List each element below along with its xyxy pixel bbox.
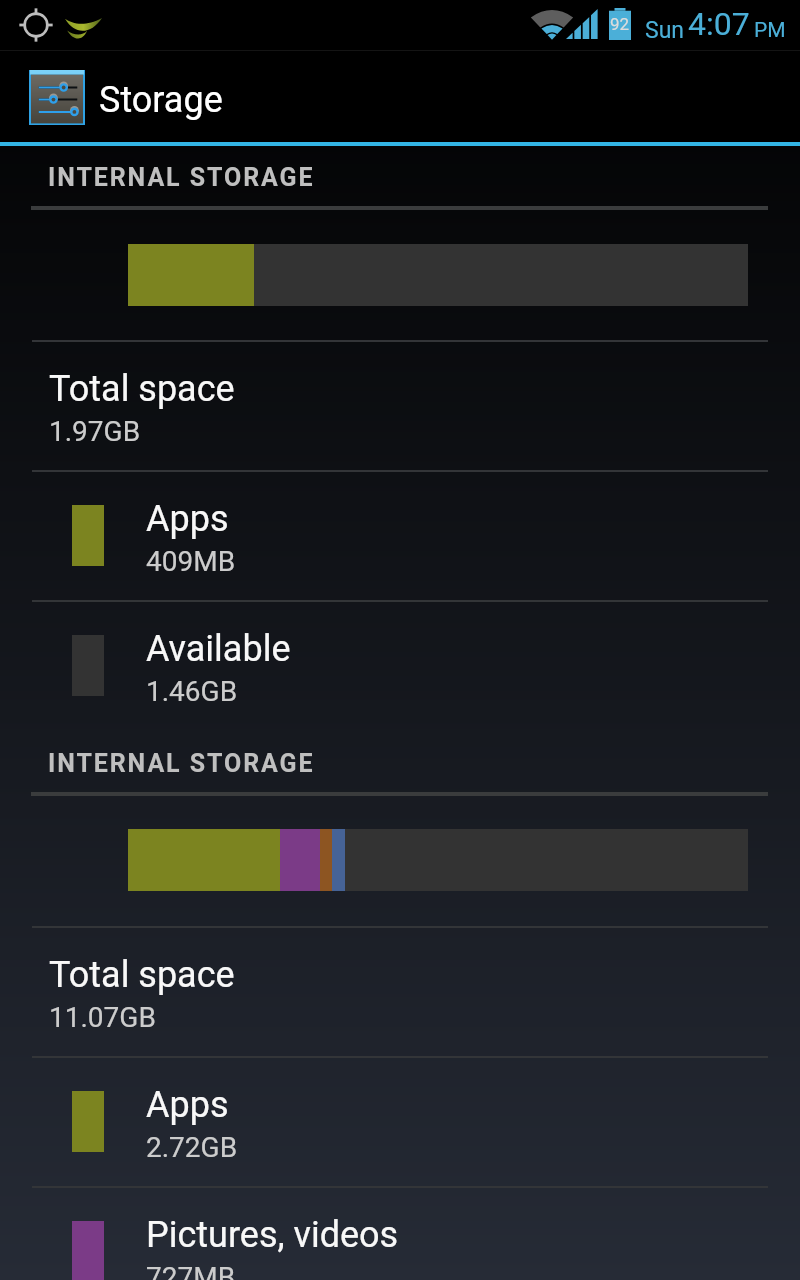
other: GPS — [19, 8, 53, 42]
other: Battery 92 percent — [609, 8, 631, 40]
staticText: 92 — [610, 14, 630, 34]
button[interactable]: Available — [0, 600, 800, 731]
staticText: 409MB — [146, 545, 236, 578]
button[interactable]: Apps — [0, 470, 800, 600]
staticText: Apps — [146, 1084, 229, 1126]
staticText: Available — [146, 628, 291, 670]
staticText: 1.46GB — [146, 675, 238, 708]
button[interactable]: Apps — [0, 1056, 800, 1186]
staticText: INTERNAL STORAGE — [48, 163, 315, 192]
staticText: Sun — [645, 17, 685, 44]
button[interactable]: Pictures, videos — [0, 1186, 800, 1280]
button[interactable]: Settings — [0, 51, 800, 142]
staticText: Total space — [49, 954, 235, 996]
staticText: Total space — [49, 368, 235, 410]
staticText: 2.72GB — [146, 1131, 238, 1164]
staticText: 11.07GB — [49, 1001, 156, 1034]
staticText: Pictures, videos — [146, 1214, 399, 1256]
other: Wi-Fi — [530, 8, 574, 40]
staticText: Apps — [146, 498, 229, 540]
staticText: 727MB — [146, 1261, 236, 1280]
other: Settings — [29, 70, 85, 125]
staticText: 4:07 — [688, 5, 750, 43]
staticText: PM — [754, 18, 786, 43]
staticText: INTERNAL STORAGE — [48, 749, 315, 778]
button[interactable]: Total space — [0, 926, 800, 1056]
button[interactable]: Total space — [0, 340, 800, 470]
other: Signal — [566, 8, 600, 40]
staticText: 1.97GB — [49, 415, 141, 448]
staticText: Storage — [99, 79, 223, 121]
